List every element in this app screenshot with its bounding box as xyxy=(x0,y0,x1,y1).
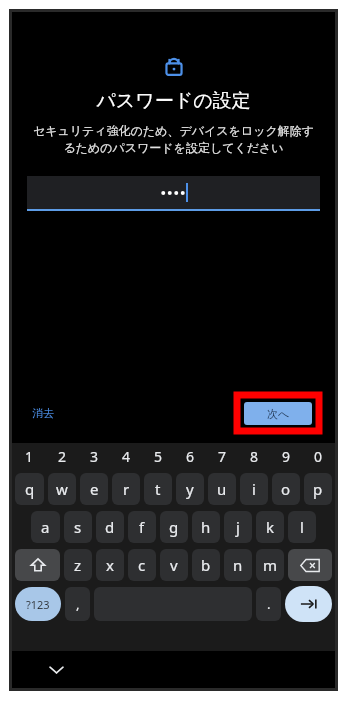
staticText: . xyxy=(267,595,271,613)
staticText: a xyxy=(41,517,50,537)
button[interactable]: 7 xyxy=(206,443,238,470)
other: Lock xyxy=(161,53,187,79)
button[interactable]: 3 xyxy=(78,443,110,470)
button[interactable]: 0 xyxy=(302,443,334,470)
button[interactable]: f xyxy=(128,511,156,543)
staticText: q xyxy=(25,479,35,499)
staticText: ?123 xyxy=(26,597,50,612)
button[interactable]: g xyxy=(160,511,188,543)
button[interactable]: Hide keyboard xyxy=(43,657,69,683)
staticText: g xyxy=(169,517,179,537)
button[interactable]: 消去 xyxy=(24,400,62,426)
staticText: d xyxy=(105,517,115,537)
staticText: 7 xyxy=(218,447,227,466)
button[interactable]: e xyxy=(80,473,108,505)
staticText: 6 xyxy=(186,447,195,466)
button[interactable]: v xyxy=(160,549,188,581)
button[interactable]: 2 xyxy=(46,443,78,470)
staticText: 4 xyxy=(122,447,131,466)
staticText: k xyxy=(266,517,275,537)
staticText: i xyxy=(252,479,256,499)
button[interactable]: q xyxy=(15,473,44,505)
staticText: s xyxy=(74,517,82,537)
button[interactable]: t xyxy=(144,473,172,505)
staticText: 9 xyxy=(282,447,291,466)
button[interactable]: 次へ xyxy=(244,402,312,425)
button[interactable]: p xyxy=(304,473,332,505)
staticText: 5 xyxy=(154,447,163,466)
button[interactable]: l xyxy=(288,511,316,543)
button[interactable]: k xyxy=(256,511,284,543)
staticText: p xyxy=(313,479,323,499)
staticText: y xyxy=(186,479,194,499)
staticText: w xyxy=(56,479,68,499)
staticText: c xyxy=(138,555,146,575)
staticText: 3 xyxy=(90,447,99,466)
button[interactable]: b xyxy=(192,549,220,581)
staticText: e xyxy=(90,479,99,499)
staticText: u xyxy=(217,479,227,499)
button[interactable]: 4 xyxy=(110,443,142,470)
button[interactable]: x xyxy=(96,549,124,581)
button[interactable]: ?123 xyxy=(15,587,61,621)
button[interactable]: c xyxy=(128,549,156,581)
staticText: パスワードの設定 xyxy=(96,89,251,113)
button[interactable]: Backspace xyxy=(288,549,332,581)
staticText: o xyxy=(281,479,291,499)
button[interactable]: m xyxy=(256,549,284,581)
staticText: セキュリティ強化のため、デバイスをロック解除するためのパスワードを設定してくださ… xyxy=(30,123,317,156)
staticText: 消去 xyxy=(32,406,54,420)
button[interactable]: s xyxy=(64,511,92,543)
staticText: t xyxy=(155,479,161,499)
button[interactable]: u xyxy=(208,473,236,505)
staticText: f xyxy=(139,517,145,537)
button[interactable] xyxy=(27,176,320,211)
button[interactable]: d xyxy=(96,511,124,543)
staticText: b xyxy=(201,555,211,575)
button[interactable]: n xyxy=(224,549,252,581)
button[interactable]: 5 xyxy=(142,443,174,470)
button[interactable]: Next xyxy=(285,586,332,622)
button[interactable]: w xyxy=(48,473,76,505)
staticText: x xyxy=(106,555,114,575)
button[interactable]: 8 xyxy=(238,443,270,470)
staticText: 次へ xyxy=(267,407,290,421)
staticText: l xyxy=(300,517,304,537)
button[interactable]: 9 xyxy=(270,443,302,470)
button[interactable]: , xyxy=(65,587,90,621)
button[interactable]: h xyxy=(192,511,220,543)
button[interactable]: i xyxy=(240,473,268,505)
button[interactable]: 6 xyxy=(174,443,206,470)
button[interactable]: j xyxy=(224,511,252,543)
staticText: j xyxy=(236,517,240,537)
button[interactable]: Shift xyxy=(15,549,60,581)
button[interactable]: y xyxy=(176,473,204,505)
staticText: z xyxy=(74,555,82,575)
button[interactable]: z xyxy=(64,549,92,581)
staticText: v xyxy=(170,555,178,575)
button[interactable]: o xyxy=(272,473,300,505)
staticText: 8 xyxy=(250,447,259,466)
staticText: h xyxy=(201,517,211,537)
staticText: , xyxy=(76,595,80,613)
button[interactable]: r xyxy=(112,473,140,505)
button[interactable]: 1 xyxy=(13,443,46,470)
button[interactable]: a xyxy=(31,511,60,543)
staticText: 0 xyxy=(314,447,323,466)
staticText: m xyxy=(263,555,278,575)
staticText: n xyxy=(233,555,243,575)
button[interactable]: . xyxy=(256,587,281,621)
staticText: 1 xyxy=(25,447,34,466)
staticText: r xyxy=(123,479,130,499)
staticText: 2 xyxy=(58,447,67,466)
